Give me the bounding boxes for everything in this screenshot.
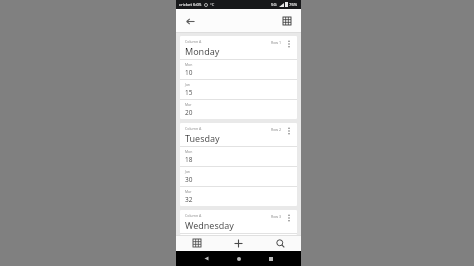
staticText: 30	[185, 175, 193, 184]
button[interactable]: Mon	[180, 60, 297, 79]
button[interactable]: Recent apps	[255, 251, 287, 266]
button[interactable]: Jan	[180, 167, 297, 186]
staticText: 15	[185, 88, 193, 97]
staticText: 32	[185, 195, 193, 204]
staticText: Wednesday	[185, 219, 234, 231]
button[interactable]: Search	[259, 235, 301, 251]
staticText: Mar	[185, 102, 192, 107]
staticText: Row 1	[271, 40, 282, 45]
button[interactable]: Mon	[180, 147, 297, 166]
button[interactable]: Back	[190, 251, 223, 266]
staticText: cricket 6:05	[179, 2, 202, 8]
staticText: Mar	[185, 189, 192, 194]
staticText: 5G	[271, 2, 277, 8]
staticText: 20	[185, 108, 193, 117]
staticText: 18	[185, 155, 193, 164]
button[interactable]: Table view	[280, 14, 294, 28]
staticText: °C	[210, 2, 215, 7]
button[interactable]: Column A	[180, 36, 297, 119]
staticText: Column A	[185, 213, 202, 218]
staticText: Column A	[185, 39, 202, 44]
button[interactable]: More options	[284, 213, 294, 223]
staticText: 10	[185, 68, 193, 77]
button[interactable]: Jan	[180, 80, 297, 99]
staticText: Row 3	[271, 214, 282, 219]
staticText: Column A	[185, 126, 202, 131]
button[interactable]: Column A	[180, 210, 297, 235]
button[interactable]: More options	[284, 39, 294, 49]
button[interactable]: Mar	[180, 187, 297, 206]
staticText: Tuesday	[185, 132, 220, 144]
button[interactable]: Add	[217, 235, 259, 251]
button[interactable]: Home	[223, 251, 255, 266]
staticText: 76%	[289, 2, 298, 8]
staticText: Jan	[185, 169, 190, 174]
staticText: Mon	[185, 149, 193, 154]
button[interactable]: Back	[183, 14, 197, 28]
button[interactable]: Column A	[180, 123, 297, 206]
staticText: Row 2	[271, 127, 282, 132]
button[interactable]: More options	[284, 126, 294, 136]
staticText: Monday	[185, 45, 220, 57]
staticText: Jan	[185, 82, 190, 87]
staticText: Mon	[185, 62, 193, 67]
button[interactable]: Mar	[180, 100, 297, 119]
button[interactable]: Table	[176, 235, 217, 251]
